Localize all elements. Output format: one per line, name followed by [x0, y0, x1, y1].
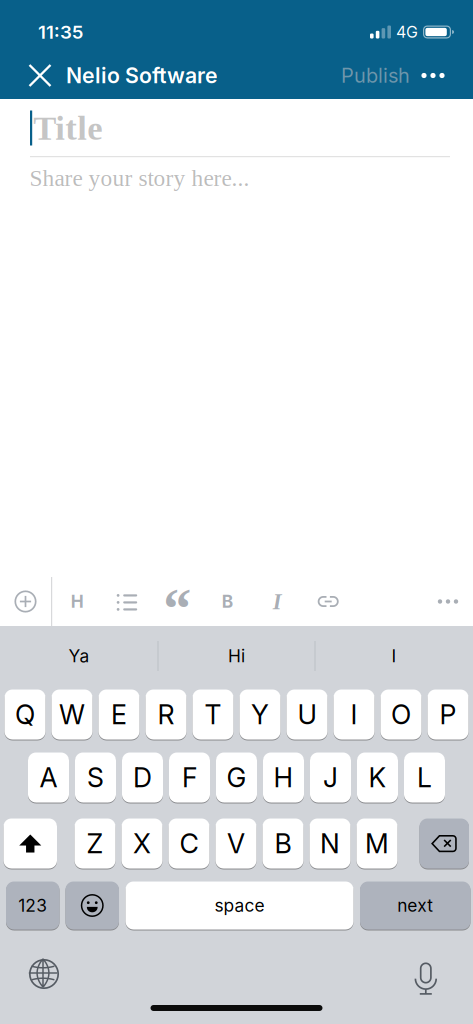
- staticText: R: [157, 699, 174, 730]
- staticText: Nelio Software: [66, 63, 218, 88]
- staticText: K: [368, 762, 386, 793]
- button[interactable]: More formatting: [423, 577, 473, 626]
- staticText: T: [204, 699, 221, 730]
- button[interactable]: E: [98, 689, 139, 740]
- button[interactable]: Heading: [52, 577, 102, 626]
- staticText: M: [365, 828, 389, 859]
- staticText: F: [182, 762, 197, 793]
- button[interactable]: Close: [19, 55, 61, 95]
- button[interactable]: B: [262, 818, 303, 869]
- staticText: Y: [251, 699, 269, 730]
- staticText: 4G: [396, 23, 418, 41]
- button[interactable]: M: [356, 818, 397, 869]
- button[interactable]: Hi: [158, 626, 314, 686]
- button[interactable]: A: [28, 752, 69, 803]
- staticText: Share your story here...: [29, 165, 249, 191]
- button[interactable]: I: [315, 626, 472, 686]
- button[interactable]: U: [286, 689, 327, 740]
- button[interactable]: next: [360, 881, 470, 930]
- staticText: Hi: [228, 646, 245, 666]
- staticText: space: [214, 895, 264, 916]
- staticText: P: [439, 699, 456, 730]
- staticText: X: [133, 828, 151, 859]
- staticText: I: [350, 699, 357, 730]
- staticText: 123: [18, 895, 47, 916]
- button[interactable]: J: [310, 752, 351, 803]
- staticText: W: [59, 699, 85, 730]
- button[interactable]: Delete: [419, 818, 469, 869]
- staticText: Publish: [341, 64, 410, 87]
- button[interactable]: I: [333, 689, 374, 740]
- staticText: B: [222, 591, 233, 612]
- staticText: next: [397, 895, 433, 916]
- button[interactable]: Bold: [202, 577, 252, 626]
- button[interactable]: W: [51, 689, 92, 740]
- staticText: H: [273, 762, 293, 793]
- button[interactable]: D: [122, 752, 163, 803]
- button[interactable]: 123: [6, 881, 59, 930]
- button[interactable]: K: [357, 752, 398, 803]
- button[interactable]: Y: [239, 689, 280, 740]
- staticText: G: [226, 762, 246, 793]
- staticText: S: [87, 762, 104, 793]
- button[interactable]: P: [427, 689, 468, 740]
- button[interactable]: L: [404, 752, 445, 803]
- button[interactable]: N: [309, 818, 350, 869]
- staticText: I: [391, 646, 396, 666]
- staticText: 11:35: [38, 21, 83, 43]
- button[interactable]: H: [263, 752, 304, 803]
- staticText: L: [417, 762, 432, 793]
- button[interactable]: Publish: [341, 64, 410, 87]
- staticText: V: [227, 828, 245, 859]
- staticText: Title: [33, 109, 102, 147]
- button[interactable]: Switch keyboard: [21, 951, 65, 995]
- button[interactable]: Insert link: [302, 577, 354, 626]
- staticText: D: [133, 762, 152, 793]
- button[interactable]: O: [380, 689, 421, 740]
- button[interactable]: Z: [74, 818, 115, 869]
- button[interactable]: S: [75, 752, 116, 803]
- staticText: U: [297, 699, 316, 730]
- staticText: “: [163, 578, 191, 640]
- button[interactable]: Blockquote: [152, 577, 202, 626]
- staticText: J: [323, 762, 338, 793]
- button[interactable]: Italic: [252, 577, 302, 626]
- staticText: Z: [86, 828, 103, 859]
- button[interactable]: Q: [4, 689, 45, 740]
- button[interactable]: space: [125, 881, 353, 930]
- button[interactable]: G: [216, 752, 257, 803]
- button[interactable]: V: [215, 818, 256, 869]
- button[interactable]: Shift: [3, 818, 57, 869]
- button[interactable]: X: [121, 818, 162, 869]
- button[interactable]: Dictate: [404, 944, 448, 1002]
- button[interactable]: Emoji: [65, 881, 119, 930]
- button[interactable]: F: [169, 752, 210, 803]
- staticText: Q: [15, 699, 35, 730]
- staticText: Ya: [68, 646, 89, 666]
- button[interactable]: Ya: [0, 626, 157, 686]
- staticText: N: [320, 828, 340, 859]
- staticText: A: [39, 762, 57, 793]
- button[interactable]: Insert media: [0, 577, 51, 626]
- button[interactable]: T: [192, 689, 233, 740]
- staticText: I: [273, 589, 282, 614]
- staticText: O: [391, 699, 411, 730]
- button[interactable]: Bulleted list: [102, 577, 152, 626]
- staticText: H: [71, 591, 84, 612]
- staticText: C: [179, 828, 198, 859]
- staticText: B: [274, 828, 291, 859]
- button[interactable]: More options: [415, 55, 451, 95]
- staticText: E: [111, 699, 127, 730]
- button[interactable]: C: [168, 818, 209, 869]
- button[interactable]: R: [145, 689, 186, 740]
